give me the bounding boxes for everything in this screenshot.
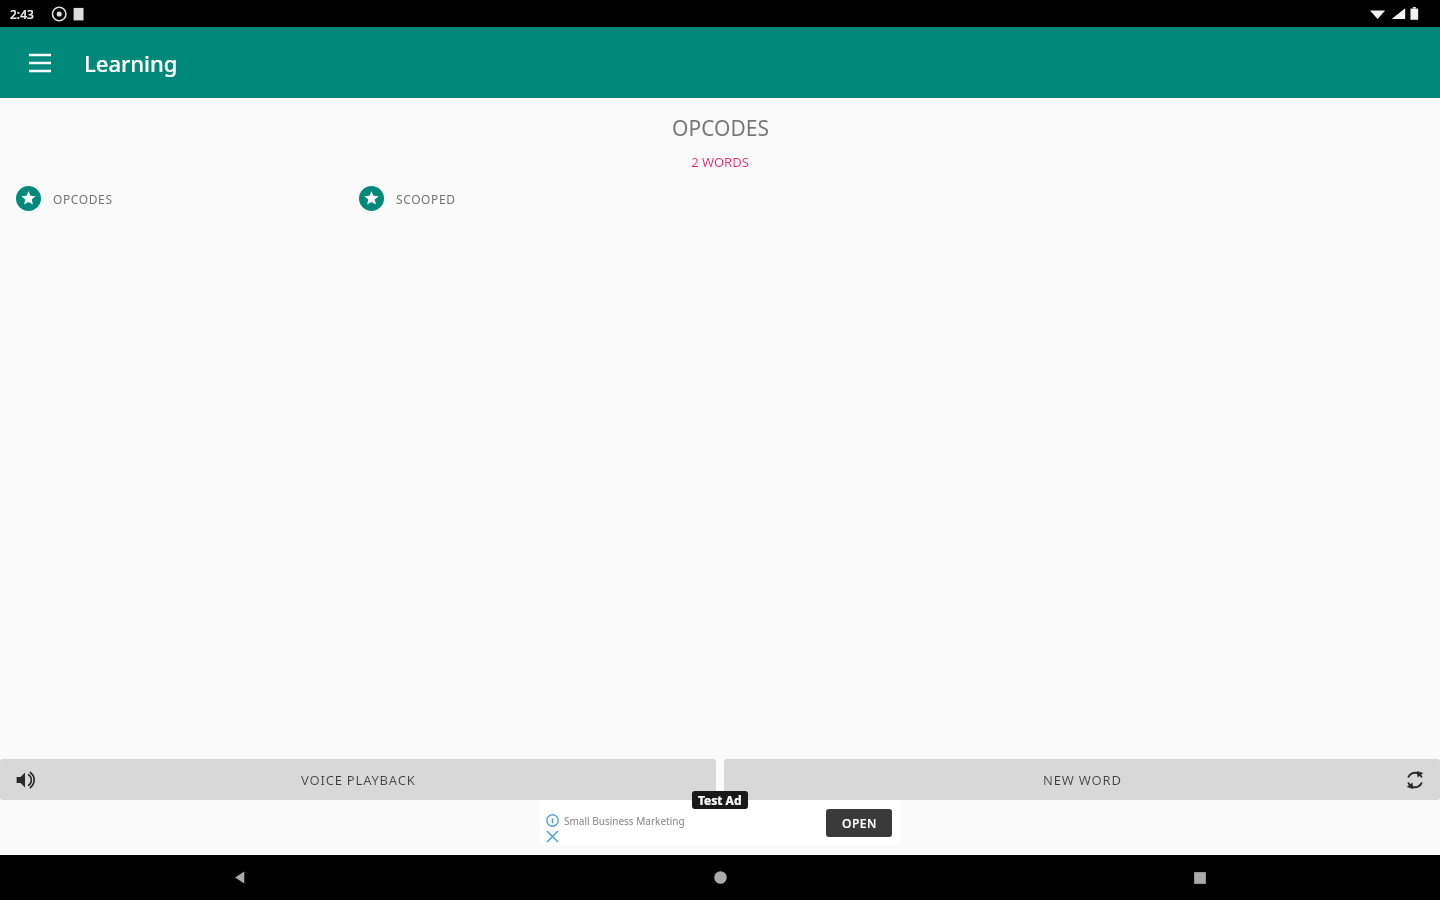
staticText: OPEN	[842, 815, 877, 831]
button[interactable]: Recent apps	[960, 855, 1440, 900]
button[interactable]: VOICE PLAYBACK	[0, 759, 716, 800]
button[interactable]: OPCODES	[12, 182, 117, 215]
staticText: VOICE PLAYBACK	[301, 771, 416, 789]
button[interactable]: SCOOPED	[355, 182, 460, 215]
staticText: OPCODES	[53, 191, 113, 207]
staticText: 2 WORDS	[691, 153, 749, 171]
other: Refresh word	[1404, 769, 1426, 791]
staticText: 2:43	[10, 6, 34, 22]
button[interactable]: Back	[0, 855, 480, 900]
button[interactable]: OPEN	[826, 809, 892, 837]
other: Close ad	[547, 831, 558, 842]
staticText: SCOOPED	[396, 191, 456, 207]
staticText: OPCODES	[672, 114, 769, 143]
button[interactable]: NEW WORD	[724, 759, 1440, 800]
button[interactable]: Home	[480, 855, 960, 900]
staticText: NEW WORD	[1043, 771, 1122, 789]
button[interactable]: Open navigation menu	[14, 37, 66, 89]
staticText: Test Ad	[698, 792, 742, 808]
staticText: Small Business Marketing	[564, 814, 685, 828]
staticText: Learning	[84, 48, 178, 78]
other: Ad information	[546, 814, 559, 827]
